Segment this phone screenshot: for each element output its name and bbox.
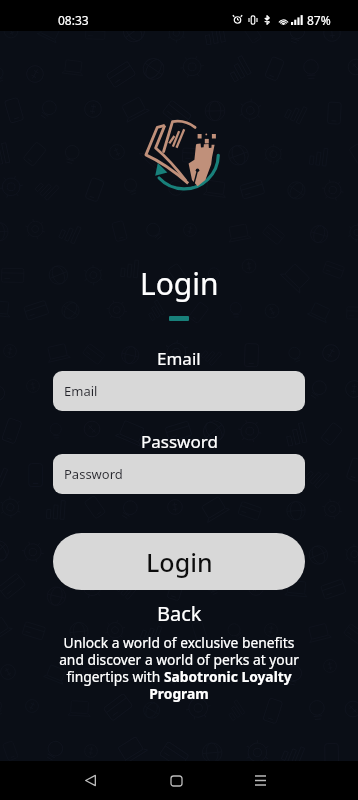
button[interactable]: Recent apps — [232, 761, 289, 800]
staticText: Email — [64, 382, 98, 400]
button[interactable]: Login — [53, 533, 305, 590]
button[interactable]: Back — [147, 597, 212, 630]
button[interactable]: Password — [53, 454, 305, 494]
staticText: Back — [157, 600, 202, 627]
button[interactable]: Home — [148, 761, 205, 800]
button[interactable]: Back — [62, 761, 119, 800]
staticText: 08:33 — [58, 12, 89, 28]
staticText: Password — [141, 430, 218, 453]
staticText: Login — [140, 263, 219, 304]
staticText: Email — [157, 347, 201, 370]
button[interactable]: Email — [53, 371, 305, 411]
staticText: Unlock a world of exclusive benefits and… — [53, 633, 305, 703]
staticText: 87% — [307, 12, 331, 28]
staticText: Login — [146, 545, 213, 579]
staticText: Password — [64, 465, 123, 483]
